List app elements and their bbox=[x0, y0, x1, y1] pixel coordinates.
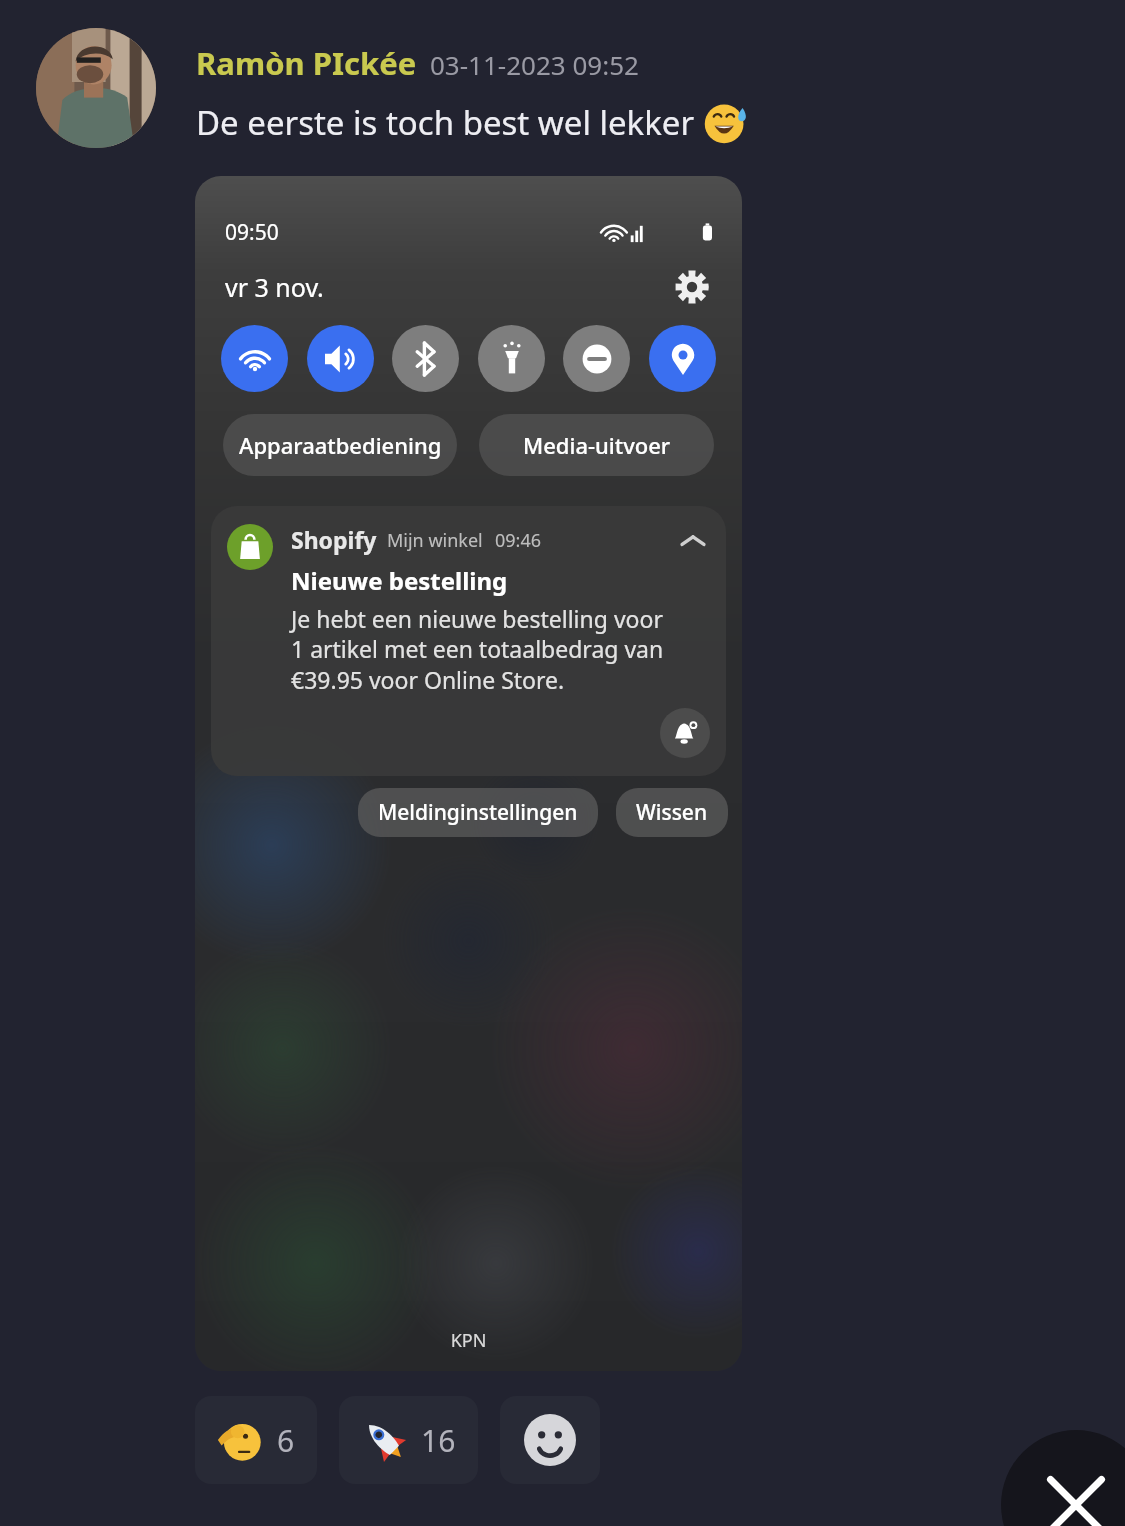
staticText: Je hebt een nieuwe bestelling voor 1 art… bbox=[291, 603, 676, 696]
button[interactable]: Close bbox=[1001, 1430, 1125, 1526]
button[interactable]: Meldinginstellingen bbox=[358, 788, 598, 837]
button[interactable]: Add reaction bbox=[500, 1396, 600, 1484]
button[interactable]: Do not disturb bbox=[563, 325, 630, 392]
staticText: 09:50 bbox=[225, 218, 279, 247]
button[interactable]: Wi-Fi bbox=[221, 325, 288, 392]
button[interactable]: 16 bbox=[339, 1396, 478, 1484]
button[interactable]: Apparaatbediening bbox=[223, 414, 457, 476]
staticText: vr 3 nov. bbox=[225, 270, 324, 304]
staticText: 16 bbox=[421, 1420, 456, 1461]
staticText: 03-11-2023 09:52 bbox=[430, 47, 639, 82]
button[interactable]: Profile photo bbox=[36, 28, 156, 148]
button[interactable]: Shopify bbox=[211, 506, 726, 776]
staticText: Apparaatbediening bbox=[239, 430, 442, 460]
button[interactable]: Silence notifications bbox=[660, 708, 710, 758]
button[interactable]: Sound bbox=[307, 325, 374, 392]
staticText: Mijn winkel bbox=[387, 528, 483, 553]
button[interactable]: Flashlight bbox=[478, 325, 545, 392]
button[interactable]: Wissen bbox=[616, 788, 728, 837]
button[interactable]: Location bbox=[649, 325, 716, 392]
staticText: Nieuwe bestelling bbox=[291, 564, 508, 597]
button[interactable]: Collapse bbox=[676, 524, 710, 558]
staticText: 6 bbox=[277, 1420, 295, 1461]
staticText: Shopify bbox=[291, 524, 377, 555]
staticText: De eerste is toch best wel lekker bbox=[196, 100, 703, 145]
button[interactable]: Bluetooth bbox=[392, 325, 459, 392]
staticText: 09:46 bbox=[495, 528, 542, 553]
staticText: Wissen bbox=[636, 798, 708, 827]
button[interactable]: 6 bbox=[195, 1396, 317, 1484]
button[interactable]: Settings bbox=[672, 267, 712, 307]
staticText: Ramòn PIckée bbox=[196, 42, 417, 84]
staticText: Meldinginstellingen bbox=[378, 798, 578, 827]
staticText: KPN bbox=[195, 1328, 742, 1353]
button[interactable]: Media-uitvoer bbox=[479, 414, 714, 476]
staticText: Media-uitvoer bbox=[523, 430, 671, 460]
